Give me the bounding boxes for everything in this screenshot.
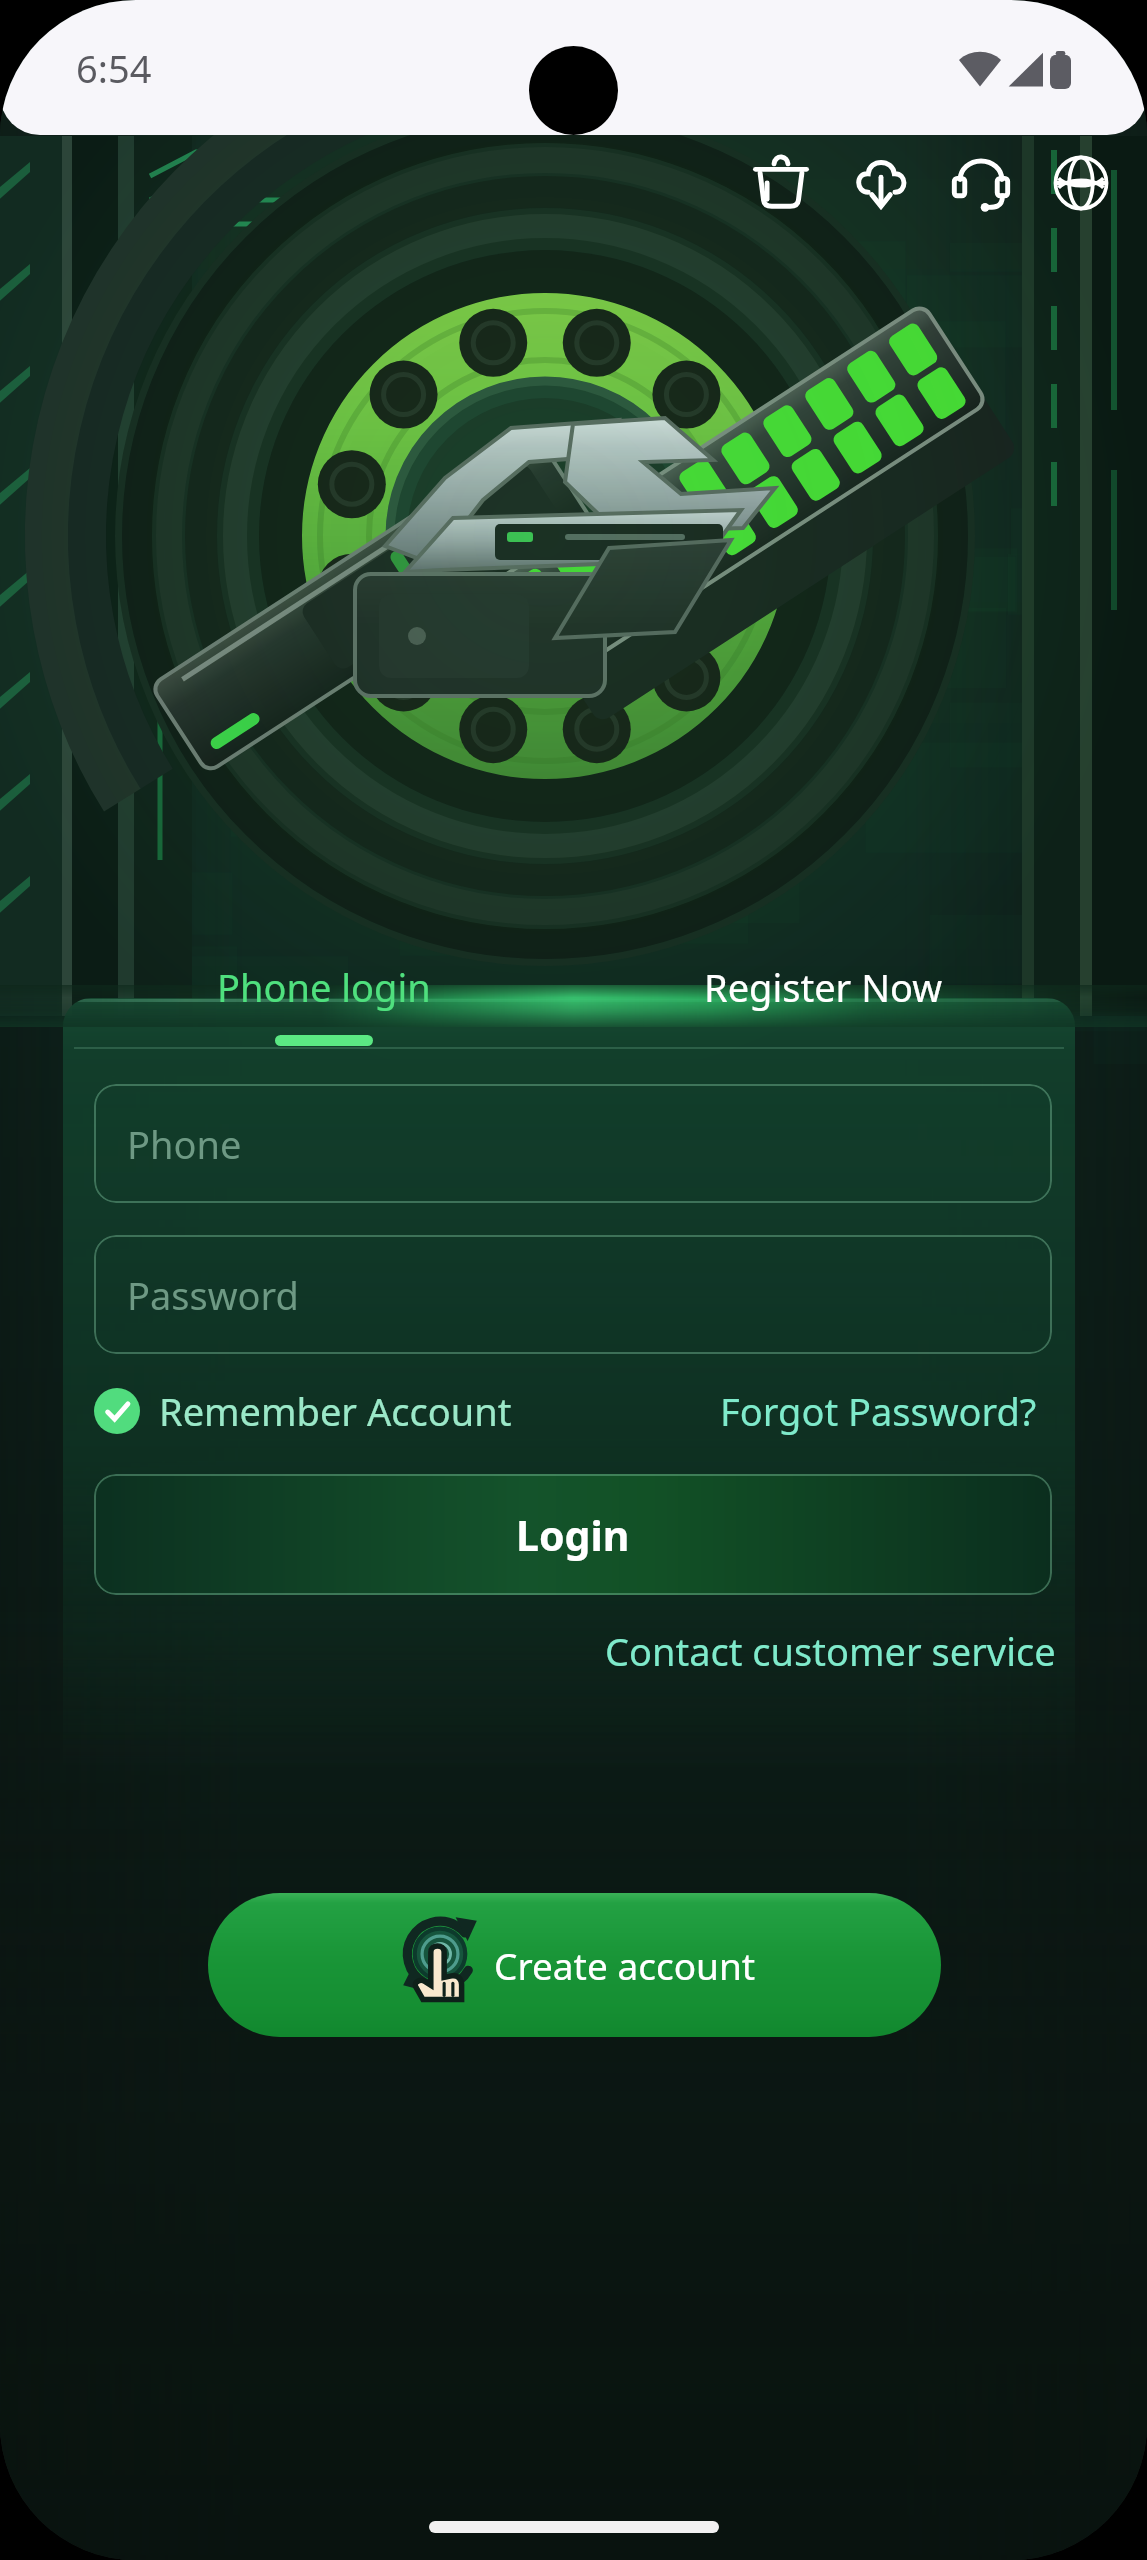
button[interactable]: Remember Account (94, 1377, 512, 1445)
staticText: Create account (494, 1940, 756, 1990)
button[interactable]: Create account (208, 1893, 941, 2037)
button[interactable]: Language (1031, 133, 1131, 233)
staticText: 6:54 (76, 42, 152, 94)
staticText: Phone login (217, 961, 431, 1013)
button[interactable]: Download (831, 133, 931, 233)
button[interactable]: Login (94, 1474, 1052, 1595)
button[interactable]: Customer service (931, 133, 1031, 233)
button[interactable]: Contact customer service (496, 1618, 1056, 1684)
staticText: Contact customer service (605, 1625, 1056, 1677)
staticText: Login (516, 1507, 630, 1563)
button[interactable]: Forgot Password? (720, 1377, 1037, 1445)
button[interactable]: Register Now (643, 961, 1003, 1071)
button[interactable]: Phone login (144, 961, 504, 1071)
button[interactable]: Password (94, 1235, 1052, 1354)
button[interactable]: Delete (731, 133, 831, 233)
staticText: Register Now (704, 961, 943, 1013)
button[interactable]: Phone (94, 1084, 1052, 1203)
staticText: Password (127, 1269, 299, 1321)
staticText: Phone (127, 1118, 242, 1170)
staticText: Remember Account (159, 1385, 512, 1437)
